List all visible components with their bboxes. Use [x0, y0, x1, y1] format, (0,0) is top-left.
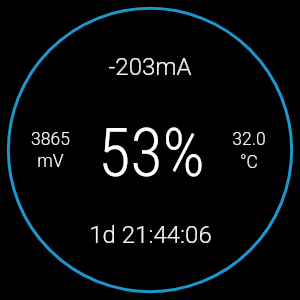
staticText: -203mA — [108, 53, 192, 81]
button[interactable]: 3865 — [23, 129, 78, 171]
staticText: 3865 — [31, 129, 70, 150]
button[interactable]: Battery status — [0, 0, 300, 300]
staticText: mV — [37, 151, 64, 172]
staticText: °C — [240, 152, 258, 173]
button[interactable]: 32.0 — [224, 129, 274, 171]
staticText: 53% — [98, 115, 205, 192]
staticText: 32.0 — [232, 129, 266, 150]
button[interactable]: -203mA — [98, 47, 202, 87]
button[interactable]: 1d 21:44:06 — [79, 215, 222, 255]
button[interactable]: 53% — [98, 115, 205, 192]
staticText: 1d 21:44:06 — [89, 221, 212, 249]
